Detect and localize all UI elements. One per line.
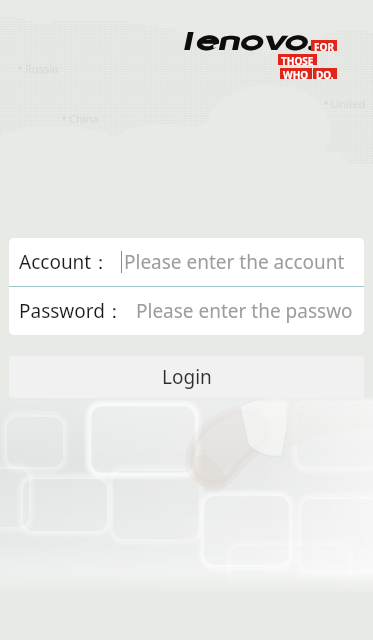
staticText: Russia (25, 61, 59, 76)
staticText: Please enter the account (124, 249, 345, 275)
button[interactable]: Account： (9, 238, 364, 286)
other: Lenovo logo (0, 0, 373, 640)
button[interactable]: Login (9, 356, 364, 398)
staticText: WHO (283, 68, 309, 79)
staticText: DO. (316, 68, 334, 79)
staticText: Account： (19, 249, 111, 275)
staticText: FOR (314, 40, 334, 51)
other: For Those Who Do. (265, 40, 337, 79)
staticText: Password： (19, 298, 124, 324)
staticText: Please enter the passwo (136, 298, 353, 324)
staticText: United (331, 96, 366, 111)
staticText: China (69, 111, 99, 126)
staticText: THOSE (281, 54, 314, 65)
staticText: Login (162, 364, 212, 390)
button[interactable]: Password： (9, 287, 364, 335)
